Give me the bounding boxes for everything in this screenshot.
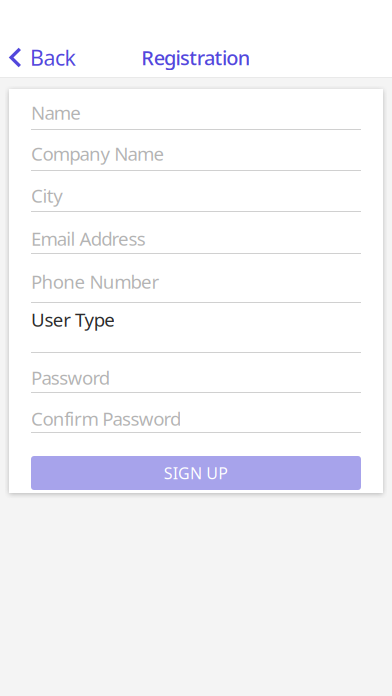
staticText: Password bbox=[31, 365, 110, 390]
staticText: Confirm Password bbox=[31, 406, 181, 431]
staticText: User Type bbox=[31, 307, 115, 332]
button[interactable]: SIGN UP bbox=[31, 456, 361, 490]
button[interactable]: Email Address bbox=[31, 212, 361, 254]
button[interactable]: Phone Number bbox=[31, 254, 361, 303]
staticText: SIGN UP bbox=[164, 462, 228, 484]
button[interactable]: Name bbox=[31, 89, 361, 130]
button[interactable]: Company Name bbox=[31, 130, 361, 171]
button[interactable]: Password bbox=[31, 353, 361, 393]
staticText: City bbox=[31, 183, 63, 208]
staticText: Email Address bbox=[31, 226, 146, 251]
button[interactable]: Back bbox=[0, 38, 87, 77]
staticText: Company Name bbox=[31, 141, 164, 166]
staticText: Name bbox=[31, 100, 81, 125]
button[interactable]: Confirm Password bbox=[31, 393, 361, 433]
staticText: Registration bbox=[141, 44, 251, 71]
button[interactable]: City bbox=[31, 171, 361, 212]
button[interactable]: User Type bbox=[31, 303, 361, 353]
staticText: Phone Number bbox=[31, 269, 159, 294]
staticText: Back bbox=[30, 43, 75, 72]
